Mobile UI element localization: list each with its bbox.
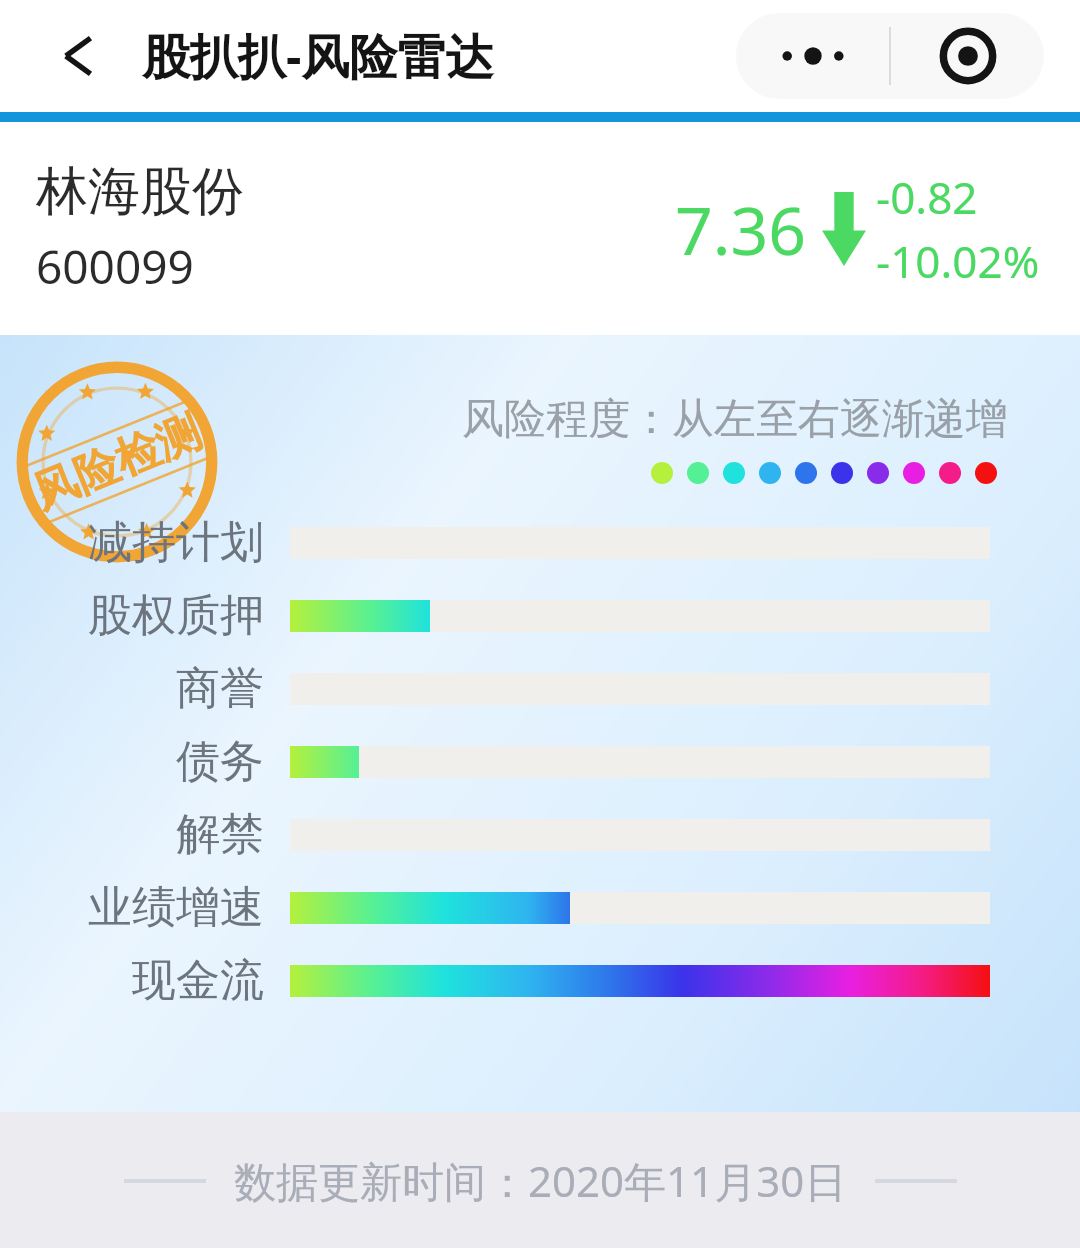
staticText: 数据更新时间：2020年11月30日 [234, 1152, 847, 1209]
button[interactable]: 现金流 [0, 944, 1080, 1017]
button[interactable]: Back [38, 24, 102, 88]
staticText: -0.82 [876, 167, 978, 227]
button[interactable]: 解禁 [0, 798, 1080, 871]
staticText: 债务 [176, 734, 264, 789]
staticText: 600099 [36, 235, 194, 298]
button[interactable]: Close mini program [891, 13, 1044, 99]
button[interactable]: 减持计划 [0, 506, 1080, 579]
staticText: 风险程度：从左至右逐渐递增 [462, 393, 1008, 446]
staticText: 现金流 [132, 953, 264, 1008]
button[interactable]: More options [736, 13, 889, 99]
button[interactable]: 商誉 [0, 652, 1080, 725]
button[interactable]: 债务 [0, 725, 1080, 798]
staticText: 7.36 [675, 184, 806, 274]
staticText: 减持计划 [88, 515, 264, 570]
button[interactable]: 林海股份 [0, 122, 1080, 335]
button[interactable]: 股权质押 [0, 579, 1080, 652]
staticText: 股扒扒-风险雷达 [142, 23, 494, 89]
button[interactable]: 业绩增速 [0, 871, 1080, 944]
staticText: -10.02% [876, 231, 1040, 291]
staticText: 解禁 [176, 807, 264, 862]
staticText: 风险检测 [25, 404, 209, 521]
staticText: 林海股份 [36, 159, 244, 225]
staticText: 商誉 [176, 661, 264, 716]
staticText: 业绩增速 [88, 880, 264, 935]
staticText: 股权质押 [88, 588, 264, 643]
